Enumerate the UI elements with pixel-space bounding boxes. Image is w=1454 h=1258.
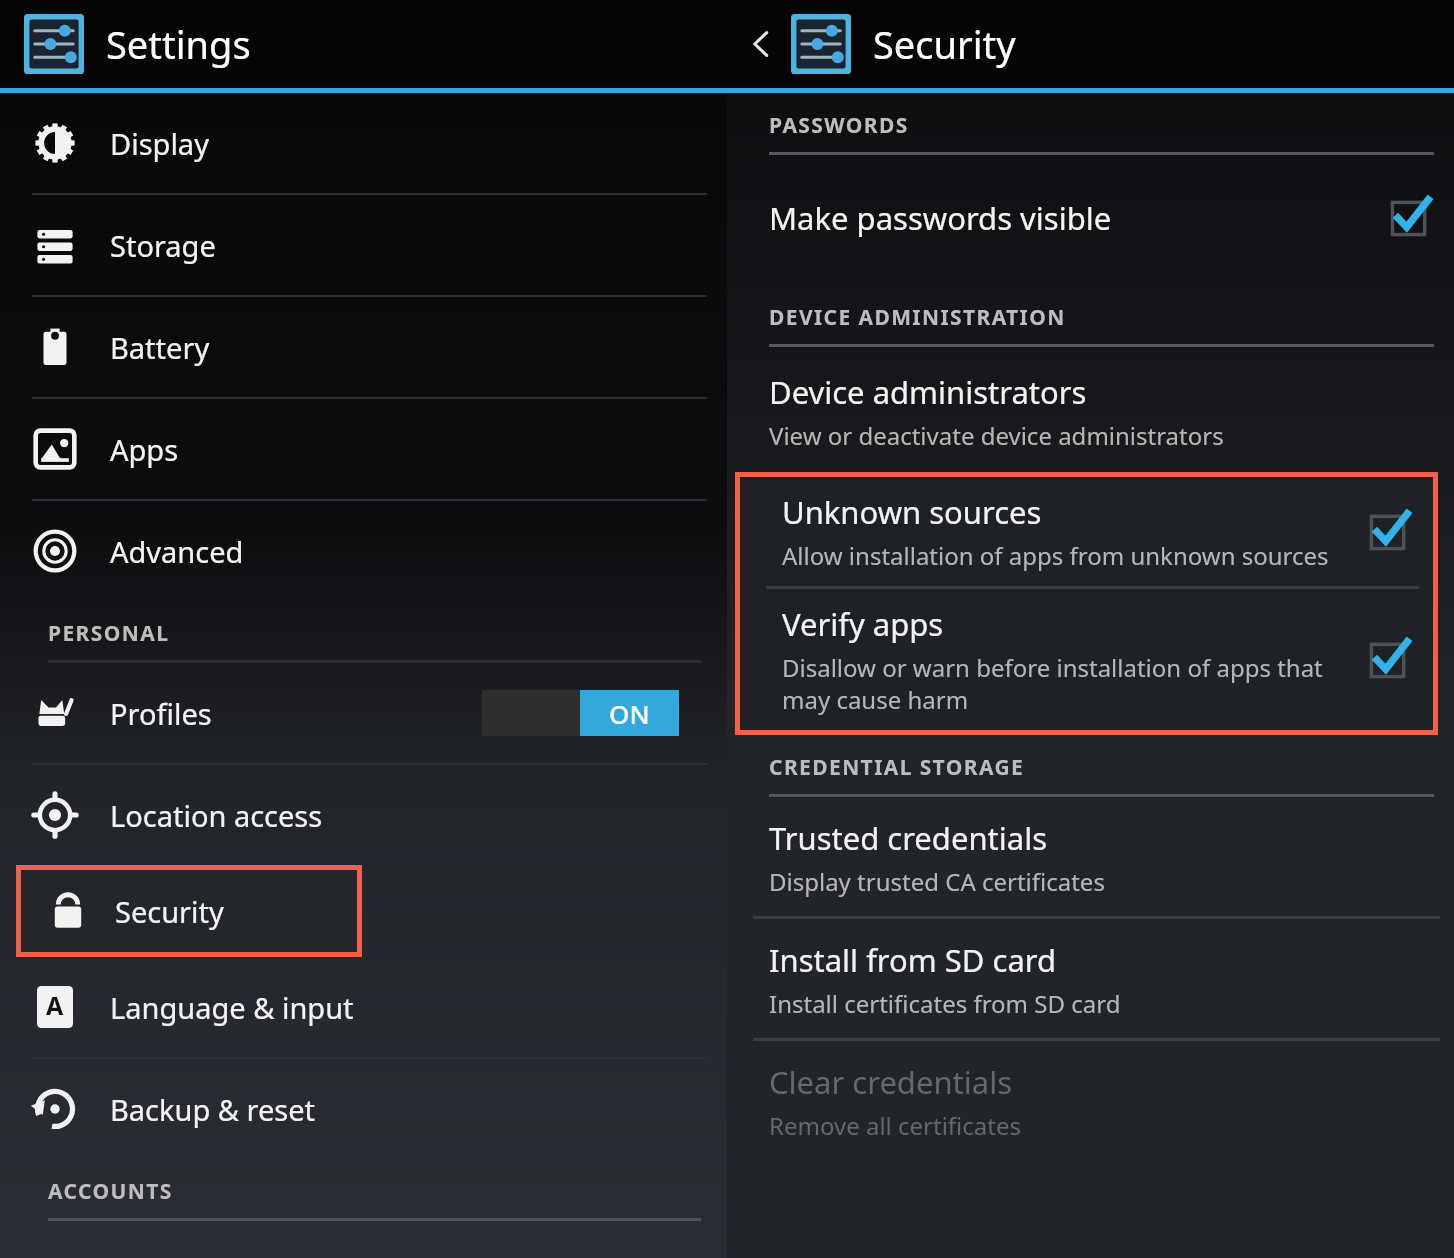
staticText: Install certificates from SD card (769, 987, 1121, 1020)
staticText: Device administrators (769, 371, 1087, 413)
button[interactable]: Location access (0, 765, 727, 865)
staticText: Location access (110, 796, 727, 835)
staticText: Display trusted CA certificates (769, 865, 1105, 898)
button[interactable]: Device administrators (727, 347, 1454, 472)
staticText: Security (115, 892, 224, 931)
staticText: Storage (110, 226, 727, 265)
staticText: Backup & reset (110, 1090, 727, 1129)
button[interactable]: Make passwords visible (727, 155, 1454, 285)
staticText: Advanced (110, 532, 727, 571)
staticText: Settings (106, 18, 251, 70)
button[interactable]: Settings (0, 0, 727, 88)
button[interactable]: Display (0, 93, 727, 193)
staticText: DEVICE ADMINISTRATION (769, 303, 1066, 332)
button[interactable]: Back (739, 21, 785, 67)
button[interactable]: Apps (0, 399, 727, 499)
staticText: Remove all certificates (769, 1109, 1021, 1142)
button[interactable]: Storage (0, 195, 727, 295)
staticText: Language & input (110, 988, 727, 1027)
staticText: Clear credentials (769, 1061, 1013, 1103)
button[interactable]: Verify apps (740, 589, 1433, 730)
staticText: Security (873, 18, 1016, 70)
staticText: Display (110, 124, 727, 163)
staticText: View or deactivate device administrators (769, 419, 1224, 452)
staticText: A (46, 988, 64, 1022)
staticText: Allow installation of apps from unknown … (782, 539, 1329, 572)
button[interactable]: Security (21, 870, 357, 952)
button[interactable]: Install from SD card (727, 919, 1454, 1038)
button[interactable]: Unknown sources (740, 477, 1433, 586)
staticText: Apps (110, 430, 727, 469)
staticText: ON (609, 696, 650, 731)
button[interactable]: Advanced (0, 501, 727, 601)
staticText: Unknown sources (782, 491, 1042, 533)
staticText: Make passwords visible (769, 197, 1112, 239)
button[interactable]: Backup & reset (0, 1059, 727, 1159)
button[interactable]: Profiles on (482, 690, 679, 736)
button[interactable]: Battery (0, 297, 727, 397)
button[interactable]: Profiles (0, 663, 727, 763)
staticText: Disallow or warn before installation of … (782, 651, 1341, 716)
button[interactable]: Clear credentials (727, 1041, 1454, 1160)
staticText: PASSWORDS (769, 111, 909, 140)
staticText: Install from SD card (769, 939, 1057, 981)
staticText: Battery (110, 328, 727, 367)
staticText: ACCOUNTS (48, 1177, 173, 1206)
staticText: Trusted credentials (769, 817, 1047, 859)
staticText: PERSONAL (48, 619, 170, 648)
button[interactable]: A (0, 957, 727, 1057)
staticText: CREDENTIAL STORAGE (769, 753, 1025, 782)
staticText: Verify apps (782, 603, 944, 645)
staticText: Profiles (110, 694, 482, 733)
button[interactable]: Trusted credentials (727, 797, 1454, 916)
